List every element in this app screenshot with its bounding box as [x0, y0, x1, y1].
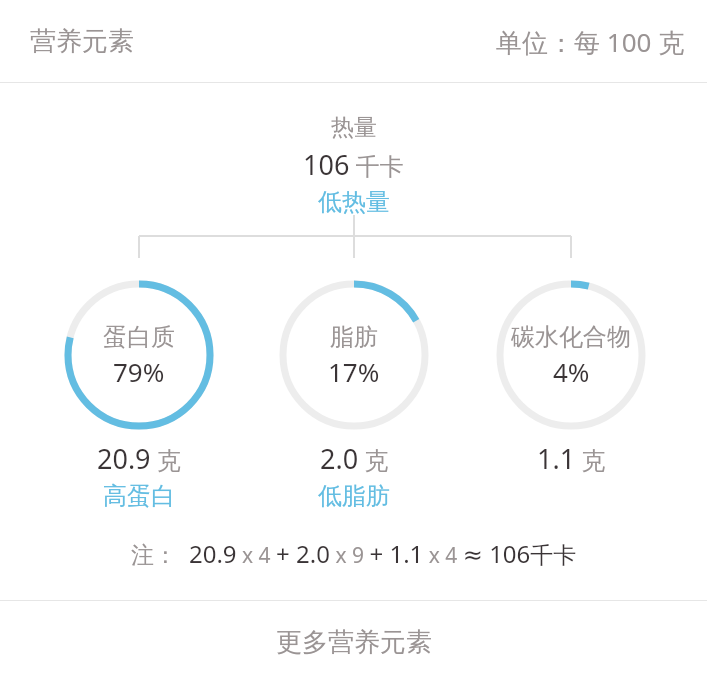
- staticText: 2.0 克: [320, 440, 389, 477]
- staticText: 高蛋白: [103, 481, 175, 510]
- staticText: 蛋白质: [103, 322, 175, 352]
- staticText: 79%: [113, 354, 165, 389]
- staticText: 17%: [328, 354, 380, 389]
- staticText: 注： 20.9 x 4 + 2.0 x 9 + 1.1 x 4 ≈ 106千卡: [131, 537, 577, 570]
- staticText: 热量: [331, 113, 377, 142]
- staticText: 20.9 克: [97, 440, 181, 477]
- staticText: 106 千卡: [303, 146, 404, 183]
- staticText: 碳水化合物: [511, 322, 631, 352]
- staticText: 营养元素: [30, 25, 134, 58]
- staticText: 单位：每 100 克: [496, 24, 685, 60]
- staticText: 低热量: [318, 187, 390, 217]
- button[interactable]: 更多营养元素: [0, 601, 707, 684]
- staticText: 脂肪: [330, 322, 378, 352]
- staticText: 4%: [553, 354, 590, 389]
- staticText: 1.1 克: [537, 440, 606, 477]
- staticText: 更多营养元素: [276, 626, 432, 659]
- staticText: 低脂肪: [318, 481, 390, 510]
